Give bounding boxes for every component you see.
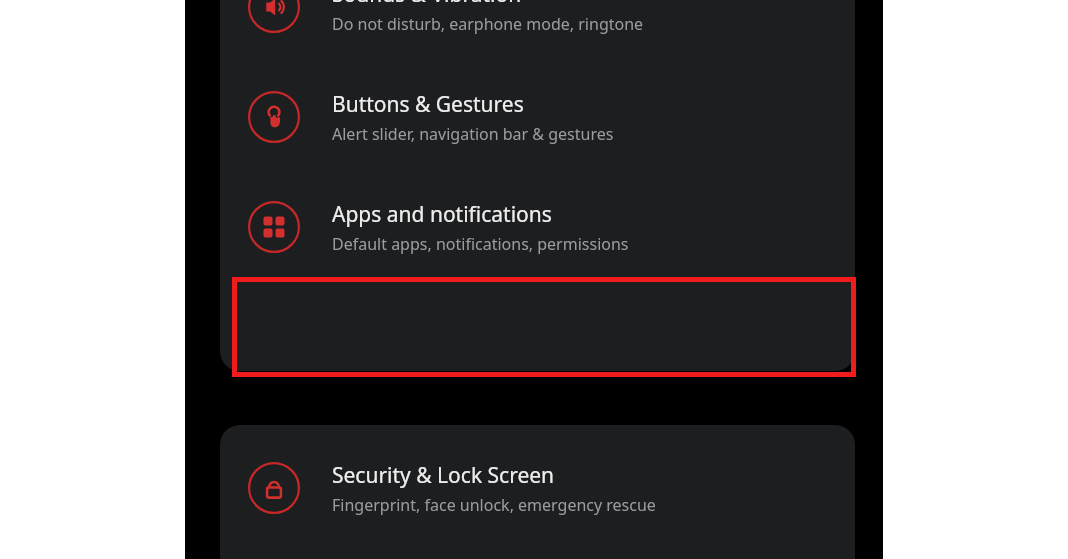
button[interactable]: Buttons & Gestures	[220, 62, 855, 172]
staticText: Do not disturb, earphone mode, ringtone	[332, 13, 644, 35]
button[interactable]: Sounds & Vibration	[220, 0, 855, 62]
other: Highlighted: Apps and notifications	[232, 277, 856, 377]
staticText: Security & Lock Screen	[332, 461, 555, 490]
staticText: Default apps, notifications, permissions	[332, 233, 629, 255]
staticText: Buttons & Gestures	[332, 90, 524, 119]
staticText: Apps and notifications	[332, 200, 552, 229]
staticText: Alert slider, navigation bar & gestures	[332, 123, 614, 145]
button[interactable]: Security & Lock Screen	[220, 433, 855, 543]
button[interactable]: Apps and notifications	[220, 172, 855, 282]
staticText: Fingerprint, face unlock, emergency resc…	[332, 494, 656, 516]
staticText: Sounds & Vibration	[332, 0, 522, 9]
